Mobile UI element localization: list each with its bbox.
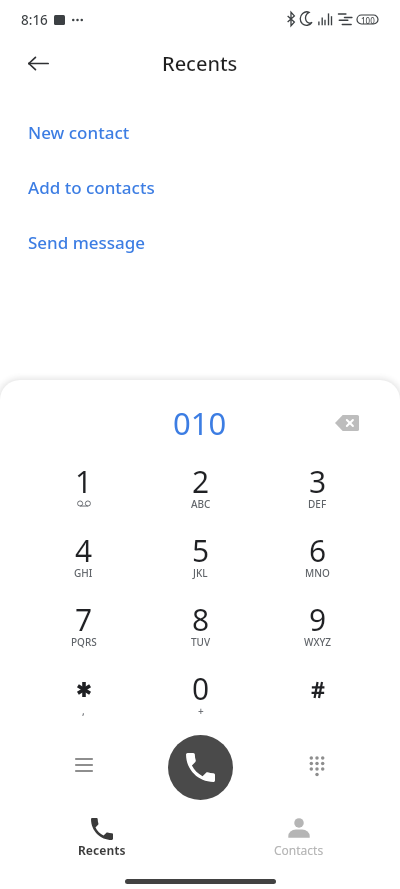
staticText: 6 [309, 530, 327, 571]
button[interactable]: Call [168, 735, 233, 800]
button[interactable]: 8 [142, 605, 259, 674]
button[interactable]: , [25, 674, 142, 743]
staticText: 7 [75, 599, 93, 640]
button[interactable]: 3 [259, 467, 376, 536]
staticText: New contact [28, 121, 130, 144]
staticText: 5 [192, 530, 210, 571]
staticText: MNO [305, 566, 330, 580]
button[interactable]: 1 [25, 467, 142, 536]
staticText: Send message [28, 231, 146, 254]
staticText: 2 [192, 461, 210, 502]
button[interactable] [259, 674, 376, 743]
staticText: ABC [191, 497, 211, 511]
staticText: Contacts [274, 842, 324, 858]
staticText: 010 [173, 402, 227, 444]
button[interactable]: Add to contacts [0, 160, 400, 215]
staticText: 8:16 [21, 11, 48, 29]
button[interactable]: 9 [259, 605, 376, 674]
button[interactable]: 7 [25, 605, 142, 674]
button[interactable]: New contact [0, 105, 400, 160]
staticText: 9 [309, 599, 327, 640]
staticText: Recents [78, 842, 126, 858]
staticText: 3 [309, 461, 327, 502]
staticText: WXYZ [304, 635, 332, 649]
button[interactable]: 0 [142, 674, 259, 743]
staticText: DEF [308, 497, 327, 511]
button[interactable]: Dialpad [295, 743, 339, 787]
staticText: JKL [193, 566, 208, 580]
button[interactable]: Send message [0, 215, 400, 270]
button[interactable]: Contacts [229, 805, 369, 875]
staticText: 8 [192, 599, 210, 640]
button[interactable]: Recents [32, 805, 172, 875]
staticText: Add to contacts [28, 176, 155, 199]
staticText: TUV [191, 635, 211, 649]
staticText: 4 [75, 530, 93, 571]
staticText: 100 [361, 15, 375, 24]
staticText: PQRS [71, 635, 97, 649]
staticText: Recents [162, 50, 238, 77]
staticText: , [82, 704, 85, 718]
button[interactable]: 5 [142, 536, 259, 605]
button[interactable]: Backspace [325, 401, 369, 445]
button[interactable]: Call log [62, 743, 106, 787]
staticText: 1 [75, 461, 93, 502]
staticText: + [198, 704, 204, 718]
staticText: GHI [74, 566, 93, 580]
button[interactable]: Back [16, 41, 60, 85]
button[interactable]: 2 [142, 467, 259, 536]
button[interactable]: 6 [259, 536, 376, 605]
button[interactable]: 4 [25, 536, 142, 605]
staticText: 0 [192, 668, 210, 709]
